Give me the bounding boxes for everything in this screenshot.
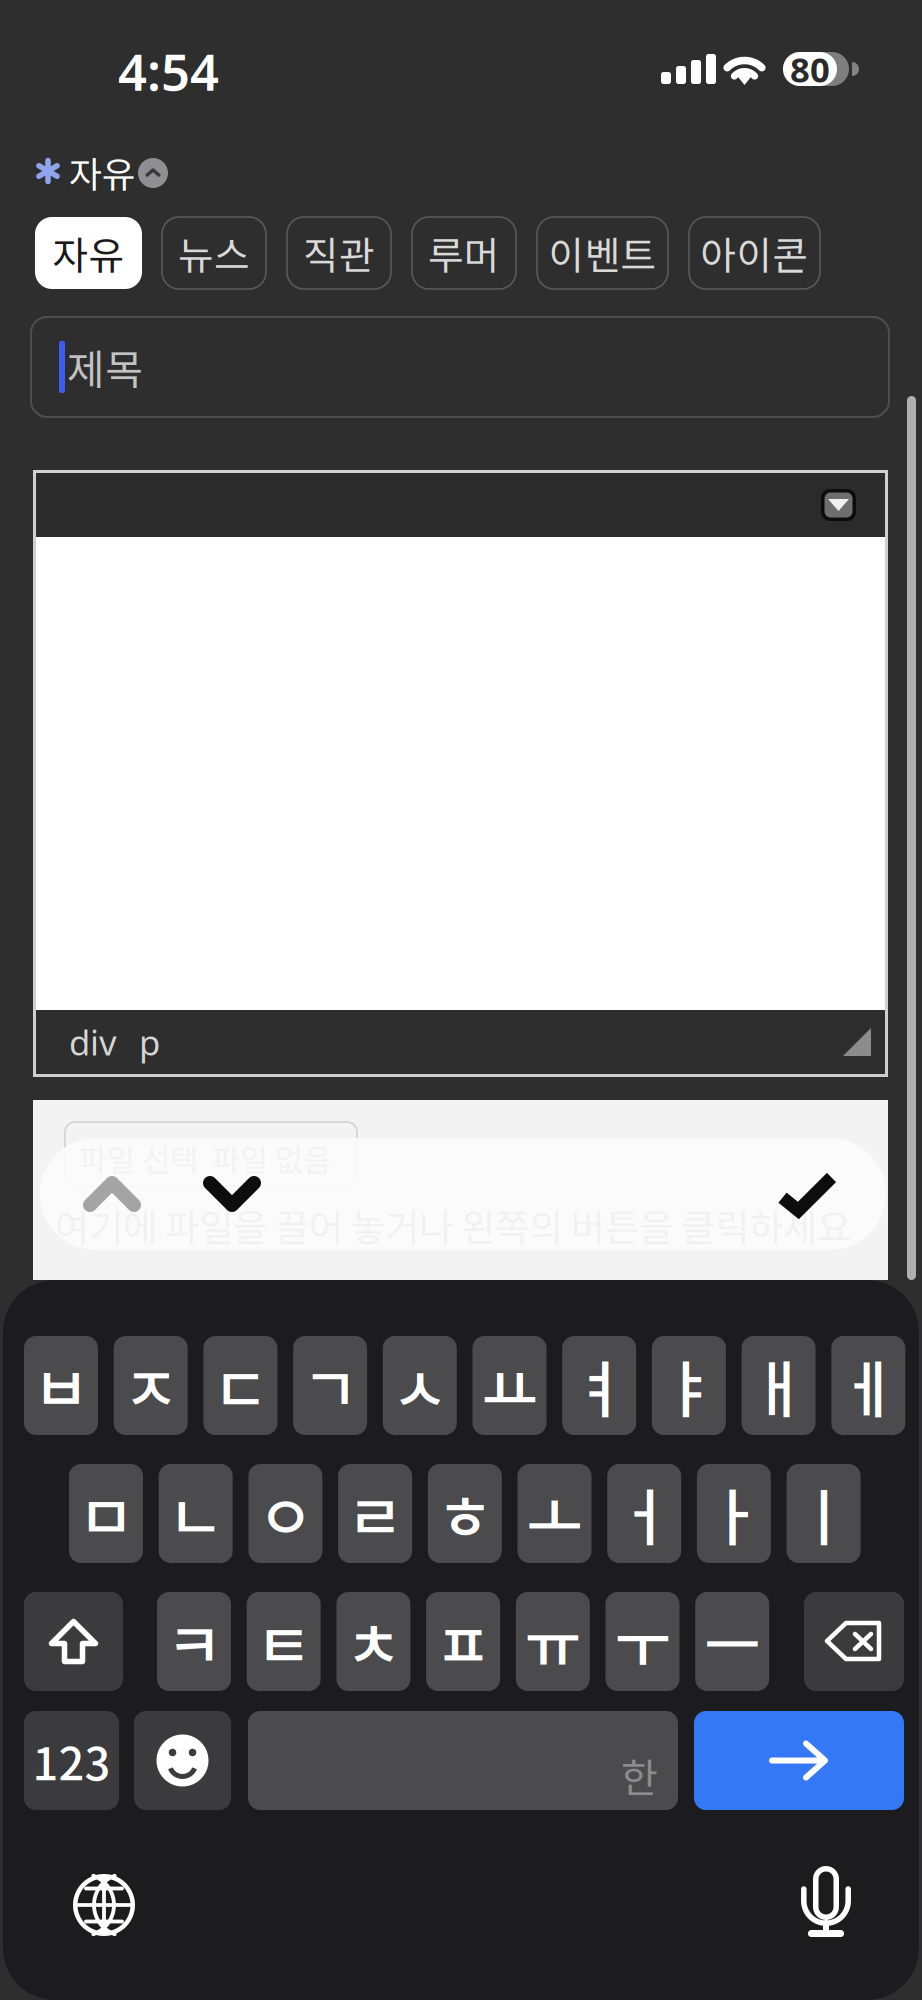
button[interactable]: 직관 (287, 217, 391, 289)
button[interactable]: ㄹ (338, 1464, 412, 1563)
staticText: ㅑ (661, 1341, 717, 1430)
button[interactable]: ㅅ (383, 1336, 457, 1435)
button[interactable]: ㅜ (605, 1592, 679, 1691)
staticText: ㅠ (525, 1597, 581, 1686)
button[interactable]: ㄱ (293, 1336, 367, 1435)
staticText: ㅕ (571, 1341, 627, 1430)
button[interactable]: ㅊ (336, 1592, 410, 1691)
button[interactable]: ㅌ (247, 1592, 321, 1691)
button[interactable]: Space (248, 1711, 678, 1810)
staticText: div (69, 1019, 117, 1065)
button[interactable]: 자유 (35, 217, 142, 289)
staticText: ㅇ (257, 1469, 313, 1558)
staticText: ㅋ (166, 1597, 222, 1686)
staticText: 여기에 파일을 끌어 놓거나 왼쪽의 버튼을 클릭하세요 (55, 1198, 851, 1252)
button[interactable]: ㅡ (695, 1592, 769, 1691)
staticText: 4:54 (118, 37, 219, 105)
button[interactable]: Dictation (801, 1868, 851, 1938)
staticText: 80 (790, 46, 830, 92)
staticText: ㅁ (78, 1469, 134, 1558)
staticText: ㅐ (751, 1341, 807, 1430)
button[interactable]: ㅔ (831, 1336, 905, 1435)
button[interactable]: Done (742, 1138, 872, 1250)
staticText: ㅈ (123, 1341, 179, 1430)
staticText: p (139, 1019, 160, 1065)
staticText: ㅌ (256, 1597, 312, 1686)
button[interactable]: Numbers (24, 1711, 119, 1810)
staticText: ㅎ (437, 1469, 493, 1558)
button[interactable]: 아이콘 (689, 217, 820, 289)
button[interactable]: ㅁ (69, 1464, 143, 1563)
staticText: ㅔ (840, 1341, 896, 1430)
button[interactable]: ㅐ (742, 1336, 816, 1435)
button[interactable]: Delete (804, 1592, 904, 1691)
staticText: ㅓ (616, 1469, 672, 1558)
staticText: 자유 (52, 225, 124, 281)
staticText: ㄱ (302, 1341, 358, 1430)
button[interactable]: Emoji (134, 1711, 231, 1810)
staticText: 아이콘 (700, 225, 808, 281)
staticText: ㅊ (345, 1597, 401, 1686)
button[interactable]: ㅣ (787, 1464, 861, 1563)
button[interactable]: ㅂ (24, 1336, 98, 1435)
button[interactable]: Return (694, 1711, 904, 1810)
staticText: 이벤트 (548, 225, 656, 281)
staticText: ㅡ (704, 1597, 760, 1686)
staticText: 자유 (69, 146, 135, 198)
staticText: 파일 선택 파일 없음 (79, 1136, 331, 1180)
button[interactable]: ㅑ (652, 1336, 726, 1435)
button[interactable]: 루머 (412, 217, 516, 289)
staticText: ㅅ (392, 1341, 448, 1430)
staticText: ㅣ (796, 1469, 852, 1558)
button[interactable]: Previous field (52, 1138, 172, 1250)
staticText: ㅜ (614, 1597, 670, 1686)
staticText: ㄴ (168, 1469, 224, 1558)
button[interactable]: Shift (24, 1592, 123, 1691)
staticText: 직관 (303, 225, 375, 281)
button[interactable]: 뉴스 (162, 217, 266, 289)
button[interactable]: 이벤트 (537, 217, 668, 289)
button[interactable]: Toolbar options (821, 489, 856, 521)
staticText: 123 (32, 1728, 110, 1793)
button[interactable]: Next keyboard (73, 1874, 135, 1936)
staticText: ㅍ (435, 1597, 491, 1686)
staticText: 제목 (67, 337, 143, 397)
staticText: ㄹ (347, 1469, 403, 1558)
staticText: ㅛ (481, 1341, 537, 1430)
button[interactable]: Collapse board (138, 158, 168, 188)
button[interactable]: ㅓ (607, 1464, 681, 1563)
button[interactable]: ㅇ (248, 1464, 322, 1563)
button[interactable]: ㄴ (159, 1464, 233, 1563)
button[interactable]: ㅗ (517, 1464, 591, 1563)
button[interactable]: ㅈ (114, 1336, 188, 1435)
staticText: 한 (621, 1746, 658, 1804)
staticText: 뉴스 (178, 225, 250, 281)
button[interactable]: ㅛ (472, 1336, 546, 1435)
button[interactable]: ㅏ (697, 1464, 771, 1563)
button[interactable]: ㅋ (157, 1592, 231, 1691)
button[interactable]: ㅕ (562, 1336, 636, 1435)
button[interactable]: ㅠ (516, 1592, 590, 1691)
staticText: ㅂ (33, 1341, 89, 1430)
staticText: 루머 (428, 225, 500, 281)
button[interactable]: ㅎ (428, 1464, 502, 1563)
staticText: ㅗ (526, 1469, 582, 1558)
staticText: ㄷ (212, 1341, 268, 1430)
button[interactable]: ㅍ (426, 1592, 500, 1691)
button[interactable]: Next field (172, 1138, 292, 1250)
staticText: ㅏ (706, 1469, 762, 1558)
button[interactable]: ㄷ (203, 1336, 277, 1435)
